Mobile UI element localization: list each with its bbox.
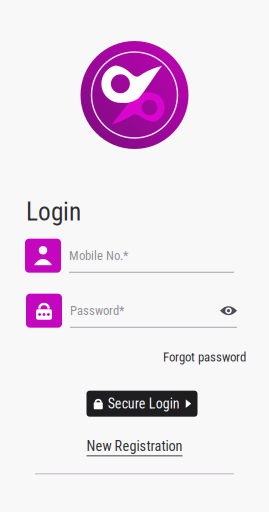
- staticText: Login: [26, 197, 81, 227]
- staticText: New Registration: [86, 438, 182, 454]
- staticText: Mobile No.*: [69, 248, 128, 263]
- button[interactable]: Secure Login: [86, 391, 197, 417]
- button[interactable]: Forgot password: [163, 350, 246, 365]
- staticText: Password*: [70, 303, 124, 318]
- staticText: Forgot password: [163, 350, 246, 365]
- button[interactable]: New Registration: [86, 438, 182, 456]
- button[interactable]: Show password: [220, 305, 237, 317]
- staticText: Secure Login: [108, 395, 180, 412]
